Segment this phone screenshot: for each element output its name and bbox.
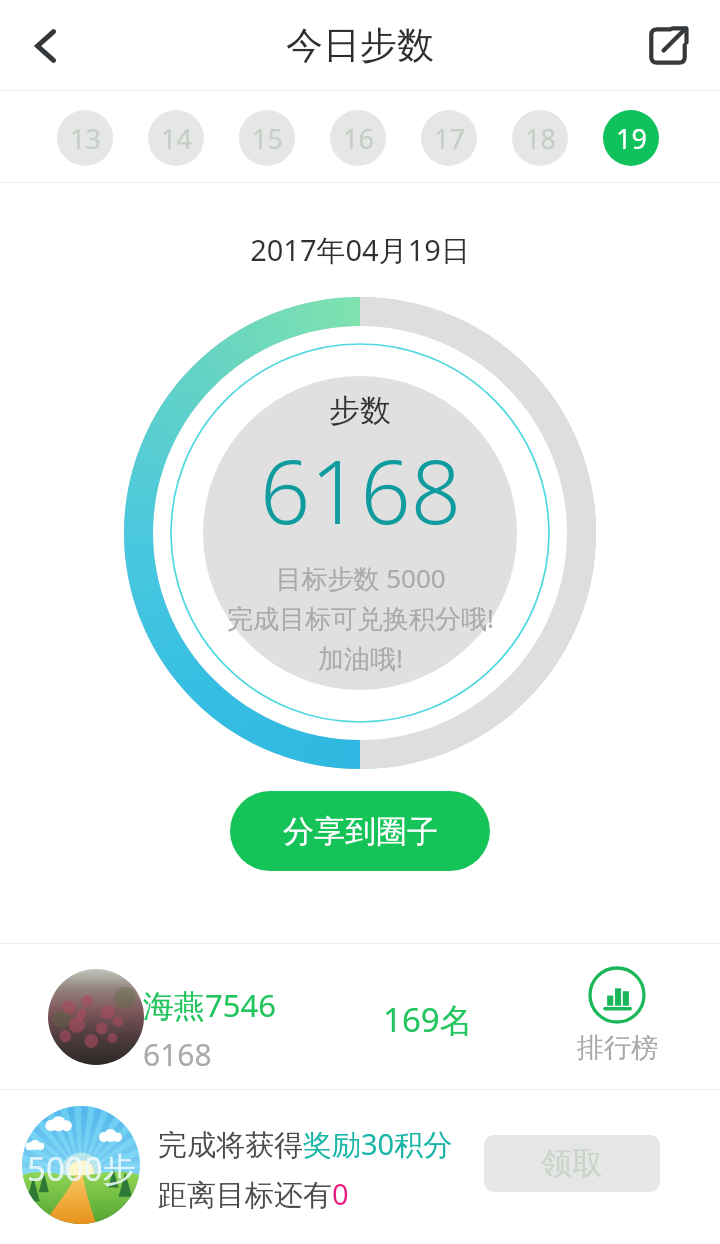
staticText: 排行榜 xyxy=(577,1031,658,1065)
staticText: 分享到圈子 xyxy=(283,812,438,851)
staticText: 15 xyxy=(252,120,283,157)
staticText: 加油哦! xyxy=(318,640,403,676)
button[interactable]: 13 xyxy=(57,110,113,166)
button[interactable]: 19 xyxy=(603,110,659,166)
button[interactable]: 14 xyxy=(148,110,204,166)
staticText: 17 xyxy=(434,120,465,157)
button[interactable]: 18 xyxy=(512,110,568,166)
button[interactable]: Share xyxy=(632,10,704,82)
staticText: 19 xyxy=(616,120,647,157)
button[interactable]: 16 xyxy=(330,110,386,166)
staticText: 完成将获得奖励30积分 xyxy=(158,1124,453,1164)
button[interactable]: 海燕7546 xyxy=(0,944,720,1089)
button[interactable]: 分享到圈子 xyxy=(230,791,490,871)
staticText: 169名 xyxy=(383,997,473,1042)
button[interactable]: 领取 xyxy=(484,1135,660,1192)
staticText: 目标步数 5000 xyxy=(275,560,446,596)
staticText: 13 xyxy=(70,120,101,157)
staticText: 16 xyxy=(343,120,374,157)
staticText: 步数 xyxy=(329,391,391,430)
staticText: 海燕7546 xyxy=(143,984,276,1026)
button[interactable]: 15 xyxy=(239,110,295,166)
staticText: 距离目标还有0 xyxy=(158,1174,349,1214)
staticText: 14 xyxy=(161,120,192,157)
button[interactable]: 排行榜 xyxy=(566,966,668,1065)
staticText: 完成目标可兑换积分哦! xyxy=(227,600,494,636)
staticText: 今日步数 xyxy=(286,22,434,69)
button[interactable]: 17 xyxy=(421,110,477,166)
staticText: 领取 xyxy=(541,1144,603,1183)
staticText: 2017年04月19日 xyxy=(0,230,720,270)
staticText: 6168 xyxy=(260,430,461,550)
staticText: 18 xyxy=(525,120,556,157)
staticText: 6168 xyxy=(143,1034,212,1075)
button[interactable]: Back xyxy=(8,8,84,84)
staticText: 5000步 xyxy=(27,1146,136,1191)
